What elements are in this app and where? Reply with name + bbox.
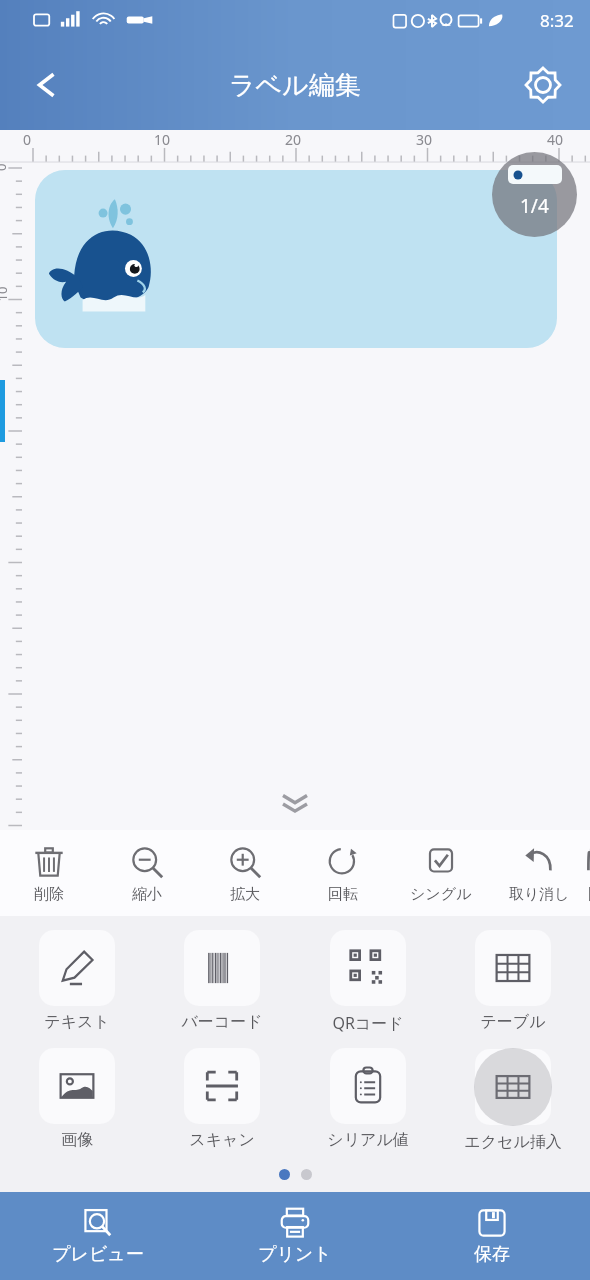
staticText: 取り消し (509, 885, 570, 904)
button[interactable]: QRコード (299, 930, 437, 1034)
staticText: 縮小 (132, 885, 162, 904)
staticText: バーコード (181, 1012, 263, 1032)
staticText: プリント (258, 1243, 332, 1266)
staticText: 0 (0, 163, 10, 171)
staticText: 回 (588, 885, 590, 904)
button[interactable]: テーブル (444, 930, 582, 1032)
button[interactable]: Label 1 of 4 (492, 152, 577, 237)
staticText: 8:32 (540, 9, 574, 32)
button[interactable]: エクセル挿入 (444, 1048, 582, 1152)
button[interactable] (35, 170, 557, 348)
staticText: 10 (0, 286, 10, 301)
staticText: 保存 (474, 1243, 510, 1266)
button[interactable]: 取り消し (490, 830, 588, 916)
button[interactable]: 拡大 (196, 830, 294, 916)
button[interactable]: 削除 (0, 830, 98, 916)
staticText: 回転 (328, 885, 358, 904)
staticText: エクセル挿入 (464, 1132, 562, 1152)
staticText: 40 (547, 130, 564, 149)
button[interactable]: Settings (518, 60, 568, 110)
staticText: QRコード (332, 1012, 404, 1034)
staticText: プレビュー (52, 1243, 144, 1266)
staticText: 画像 (61, 1130, 93, 1150)
button[interactable]: シングル (392, 830, 490, 916)
staticText: シリアル値 (327, 1130, 409, 1150)
staticText: 0 (23, 130, 32, 149)
button[interactable]: プレビュー (0, 1192, 196, 1280)
staticText: 拡大 (230, 885, 260, 904)
button[interactable]: 保存 (393, 1192, 590, 1280)
button[interactable]: 回転 (294, 830, 392, 916)
staticText: ラベル編集 (229, 69, 361, 102)
staticText: 20 (285, 130, 302, 149)
button[interactable]: スキャン (153, 1048, 291, 1150)
staticText: テーブル (480, 1012, 546, 1032)
button[interactable]: 縮小 (98, 830, 196, 916)
button[interactable]: Back (20, 58, 74, 112)
button[interactable]: 画像 (8, 1048, 146, 1150)
staticText: スキャン (189, 1130, 255, 1150)
staticText: 10 (154, 130, 171, 149)
button[interactable]: 回 (588, 830, 590, 916)
button[interactable]: シリアル値 (299, 1048, 437, 1150)
staticText: 削除 (34, 885, 64, 904)
button[interactable]: プリント (196, 1192, 393, 1280)
button[interactable]: Collapse panel (265, 784, 325, 826)
button[interactable]: テキスト (8, 930, 146, 1032)
staticText: 30 (416, 130, 433, 149)
staticText: 1/4 (520, 193, 549, 219)
staticText: シングル (410, 885, 472, 904)
staticText: テキスト (44, 1012, 110, 1032)
button[interactable]: バーコード (153, 930, 291, 1032)
